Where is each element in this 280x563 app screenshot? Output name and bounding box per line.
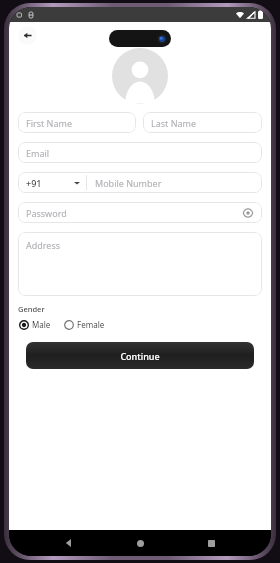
button[interactable]: Address (18, 232, 262, 296)
button[interactable]: Mobile Number (87, 172, 262, 193)
button[interactable]: Continue (26, 342, 254, 369)
button[interactable]: Password (18, 202, 262, 223)
button[interactable]: First Name (18, 112, 136, 133)
button[interactable]: Back (58, 532, 80, 554)
button[interactable]: Female (63, 318, 106, 331)
button[interactable]: Show password (242, 207, 254, 219)
staticText: Password (26, 207, 67, 219)
staticText: Continue (120, 350, 160, 362)
staticText: First Name (26, 117, 72, 129)
staticText: Male (32, 319, 51, 330)
button[interactable]: +91 (18, 172, 86, 193)
button[interactable]: Email (18, 142, 262, 163)
staticText: Mobile Number (95, 177, 162, 189)
button[interactable]: Home (129, 532, 151, 554)
button[interactable]: Recent apps (200, 532, 222, 554)
staticText: Last Name (151, 117, 197, 129)
button[interactable]: Last Name (143, 112, 262, 133)
button[interactable]: Male (18, 318, 52, 331)
staticText: +91 (26, 177, 42, 189)
button[interactable]: Back (18, 26, 37, 45)
staticText: Female (77, 319, 105, 330)
staticText: Gender (18, 304, 45, 314)
staticText: Address (26, 239, 61, 251)
staticText: Email (26, 147, 50, 159)
